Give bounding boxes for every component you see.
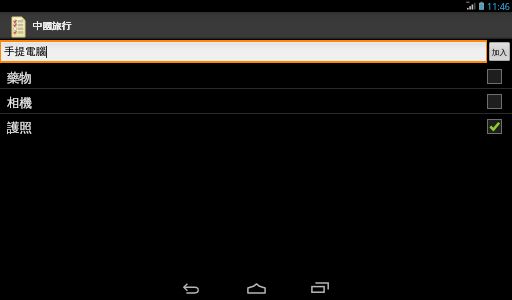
staticText: 手提電腦: [4, 45, 46, 58]
staticText: 藥物: [7, 70, 32, 86]
button[interactable]: 藥物: [0, 64, 512, 89]
button[interactable]: 加入: [490, 43, 509, 60]
staticText: 11:46: [487, 0, 511, 12]
staticText: 中國旅行: [33, 20, 71, 32]
staticText: 手提電腦: [4, 45, 46, 58]
staticText: 相機: [7, 95, 32, 111]
staticText: 加入: [492, 48, 507, 57]
button[interactable]: 手提電腦: [1, 42, 486, 61]
button[interactable]: Recent apps: [288, 266, 352, 300]
button[interactable]: Back: [160, 266, 224, 300]
staticText: 中國旅行: [33, 20, 71, 32]
staticText: 護照: [7, 120, 32, 136]
button[interactable]: 護照: [0, 114, 512, 138]
button[interactable]: Home: [224, 266, 288, 300]
staticText: 加入: [492, 48, 507, 57]
button[interactable]: 相機: [0, 89, 512, 114]
